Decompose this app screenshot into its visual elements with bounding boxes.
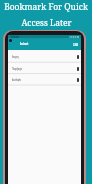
staticText: Access Later xyxy=(21,17,72,29)
staticText: CLEAR xyxy=(73,43,78,47)
button[interactable]: CLEAR xyxy=(73,38,84,50)
button[interactable]: Thopeljarget xyxy=(8,62,81,73)
button[interactable]: Back xyxy=(8,38,13,43)
staticText: Imagery xyxy=(12,55,19,59)
staticText: Thopeljarget xyxy=(12,67,22,71)
staticText: Anuthophe xyxy=(12,78,21,82)
button[interactable]: Imagery xyxy=(8,50,81,61)
staticText: Bookmark For Quick xyxy=(4,1,88,13)
button[interactable]: Anuthophe xyxy=(8,73,81,84)
staticText: Bookmark xyxy=(20,42,28,46)
